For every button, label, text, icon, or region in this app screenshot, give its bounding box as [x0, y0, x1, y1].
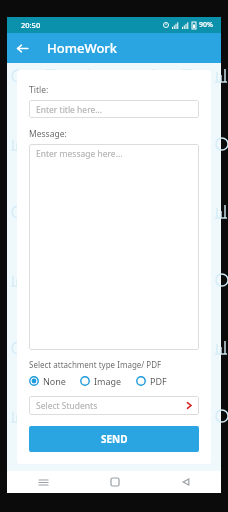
staticText: None	[43, 375, 66, 387]
button[interactable]: Select Students	[29, 396, 199, 415]
button[interactable]: None	[29, 375, 66, 387]
button[interactable]: Enter title here...	[29, 100, 199, 118]
button[interactable]: PDF	[136, 375, 167, 387]
button[interactable]: Back	[150, 471, 221, 493]
staticText: Enter title here...	[36, 104, 103, 114]
button[interactable]: Back	[7, 33, 37, 63]
button[interactable]: Image	[80, 375, 122, 387]
staticText: Enter message here...	[36, 148, 123, 160]
staticText: 90%	[199, 20, 213, 30]
staticText: Image	[94, 375, 122, 387]
staticText: Select attachment type Image/ PDF	[29, 359, 162, 370]
staticText: PDF	[150, 375, 167, 387]
staticText: Title:	[29, 84, 49, 96]
button[interactable]: Home	[79, 471, 150, 493]
button[interactable]: SEND	[29, 426, 199, 452]
staticText: Message:	[29, 128, 67, 140]
button[interactable]: Recents	[7, 471, 79, 493]
staticText: HomeWork	[47, 39, 118, 57]
staticText: Select Students	[36, 400, 185, 412]
staticText: 20:50	[21, 20, 41, 30]
button[interactable]: Enter message here...	[29, 144, 199, 350]
staticText: SEND	[101, 432, 128, 446]
